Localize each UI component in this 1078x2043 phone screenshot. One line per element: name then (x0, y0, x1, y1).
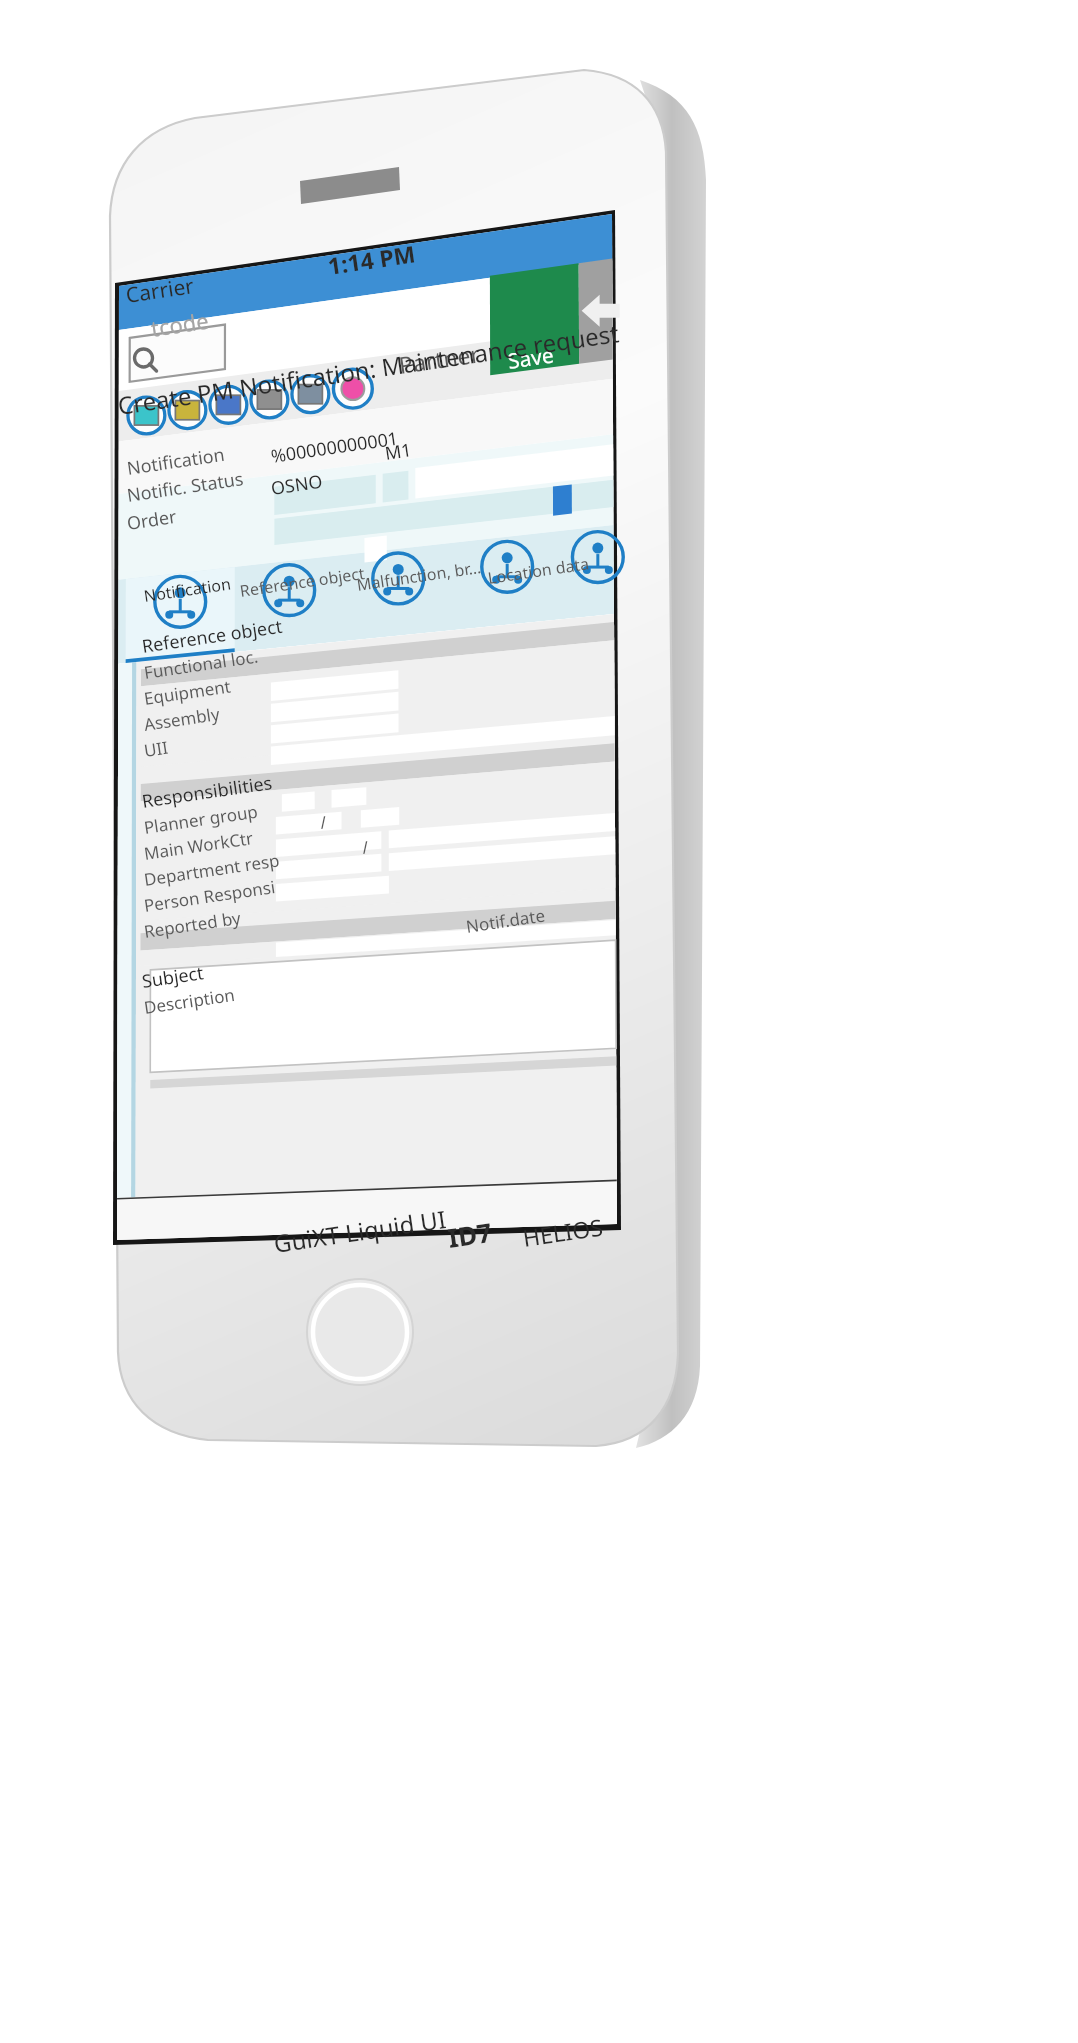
button[interactable]: Person Responsi (142, 875, 277, 917)
staticText: Equipment (142, 674, 233, 710)
staticText: Reference object (140, 614, 284, 659)
button[interactable]: HELIOS (521, 1210, 605, 1253)
staticText: HELIOS (521, 1210, 605, 1253)
staticText: Person Responsi (142, 875, 277, 917)
button[interactable]: Reference object (238, 562, 366, 602)
button[interactable]: Main WorkCtr (142, 826, 255, 865)
button[interactable]: M1 (383, 437, 413, 466)
staticText: Reported by (142, 906, 243, 943)
staticText: Notification (125, 442, 227, 481)
button[interactable]: UII (142, 736, 169, 762)
staticText: Save (506, 340, 556, 376)
staticText: / (360, 835, 370, 859)
button[interactable]: Carrier (124, 271, 196, 310)
button[interactable]: Planner group (142, 799, 259, 839)
button[interactable]: Reference object (140, 614, 284, 659)
button[interactable]: Notific. Status (125, 466, 246, 508)
staticText: Functional loc. (142, 644, 260, 684)
staticText: GuiXT Liquid UI (272, 1202, 448, 1260)
button[interactable]: GuiXT Liquid UI (272, 1202, 448, 1260)
staticText: Notific. Status (125, 466, 246, 508)
staticText: Location data (486, 552, 590, 589)
button[interactable]: tcode (149, 305, 210, 343)
staticText: Description (142, 983, 237, 1019)
button[interactable]: Order (125, 504, 178, 536)
button[interactable]: Notification (142, 572, 233, 607)
button[interactable]: Assembly (142, 702, 222, 736)
staticText: Reference object (238, 562, 366, 602)
staticText: Carrier (124, 271, 196, 310)
staticText: Notification (142, 572, 233, 607)
staticText: OSNO (269, 469, 324, 501)
staticText: Planner group (142, 799, 259, 839)
button[interactable]: Functional loc. (142, 644, 260, 684)
button[interactable]: Notif.date (464, 904, 547, 938)
staticText: M1 (383, 437, 413, 466)
button[interactable]: OSNO (269, 469, 324, 501)
button[interactable]: / (318, 810, 328, 834)
button[interactable]: %00000000001 (269, 425, 400, 469)
button[interactable]: Malfunction, br… (355, 556, 483, 596)
button[interactable]: / (360, 835, 370, 859)
button[interactable]: Description (142, 983, 237, 1019)
button[interactable]: Department resp (142, 848, 281, 891)
staticText: Malfunction, br… (355, 556, 483, 596)
staticText: ID7 (445, 1214, 495, 1255)
staticText: Main WorkCtr (142, 826, 255, 865)
button[interactable]: Save (506, 340, 556, 376)
button[interactable]: ID7 (445, 1214, 495, 1255)
staticText: UII (142, 736, 169, 762)
staticText: Partner (397, 337, 482, 380)
staticText: Create PM Notification: Maintenance requ… (116, 316, 621, 422)
button[interactable]: Create PM Notification: Maintenance requ… (116, 316, 621, 422)
button[interactable]: Responsibilities (140, 770, 274, 814)
staticText: 1:14 PM (326, 237, 417, 281)
button[interactable]: Reported by (142, 906, 243, 943)
staticText: Department resp (142, 848, 281, 891)
button[interactable]: Location data (486, 552, 590, 589)
button[interactable]: Partner (397, 337, 482, 380)
staticText: Subject (140, 960, 206, 994)
button[interactable]: Subject (140, 960, 206, 994)
staticText: / (318, 810, 328, 834)
staticText: Notif.date (464, 904, 547, 938)
button[interactable]: Equipment (142, 674, 233, 710)
staticText: Assembly (142, 702, 222, 736)
button[interactable]: 1:14 PM (326, 237, 417, 281)
button[interactable]: Notification (125, 442, 227, 481)
staticText: tcode (149, 305, 210, 343)
staticText: Responsibilities (140, 770, 274, 814)
staticText: %00000000001 (269, 425, 400, 469)
staticText: Order (125, 504, 178, 536)
